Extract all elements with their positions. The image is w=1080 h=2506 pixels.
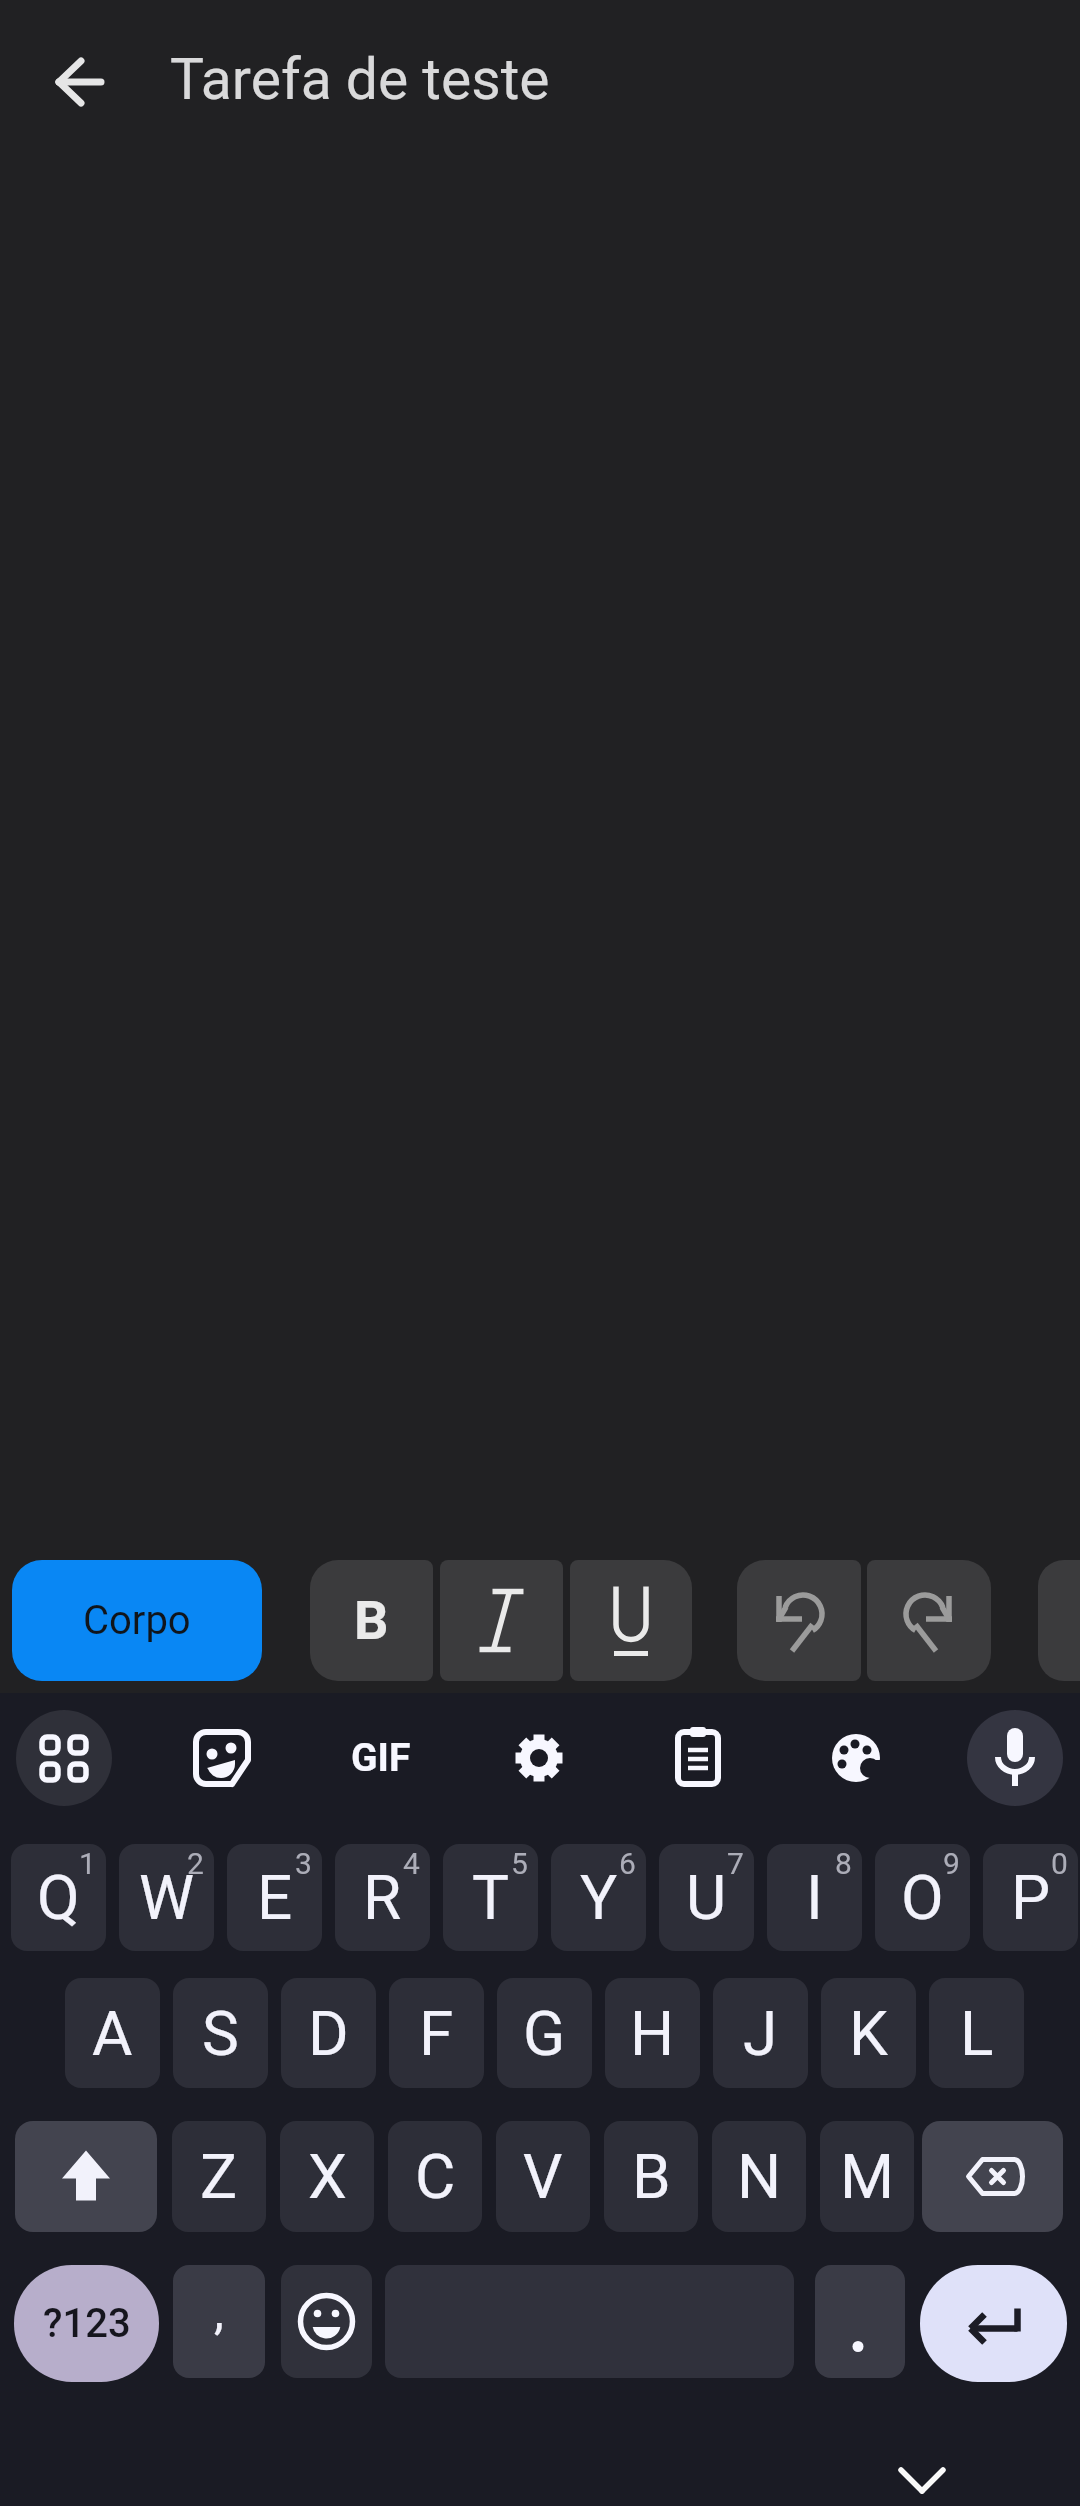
staticText: E [257, 1861, 293, 1934]
staticText: U [686, 1861, 727, 1934]
staticText: 8 [835, 1846, 852, 1881]
staticText: P [1011, 1861, 1051, 1934]
button[interactable] [1038, 1560, 1080, 1681]
staticText: W [139, 1861, 195, 1934]
button[interactable] [491, 1710, 587, 1806]
staticText: N [737, 2140, 782, 2213]
button[interactable]: G [497, 1978, 592, 2088]
staticText: Y [580, 1861, 618, 1934]
staticText: K [849, 1997, 888, 2070]
button[interactable] [808, 1710, 904, 1806]
staticText: T [472, 1861, 509, 1934]
button[interactable] [15, 2121, 157, 2232]
staticText: C [415, 2140, 456, 2213]
button[interactable]: A [65, 1978, 160, 2088]
button[interactable]: L [929, 1978, 1024, 2088]
button[interactable] [16, 1710, 112, 1806]
staticText: V [523, 2140, 563, 2213]
button[interactable]: N [712, 2121, 806, 2232]
button[interactable]: Y [551, 1844, 646, 1951]
button[interactable]: O [875, 1844, 970, 1951]
staticText: 6 [619, 1846, 636, 1881]
staticText: M [840, 2140, 895, 2213]
button[interactable] [922, 2121, 1063, 2232]
staticText: 9 [943, 1846, 960, 1881]
button[interactable] [815, 2265, 905, 2378]
button[interactable]: F [389, 1978, 484, 2088]
staticText: GIF [351, 1735, 411, 1781]
staticText: X [308, 2140, 347, 2213]
staticText: H [630, 1997, 675, 2070]
button[interactable]: J [713, 1978, 808, 2088]
staticText: Z [200, 2140, 238, 2213]
button[interactable]: B [310, 1560, 433, 1681]
staticText: B [632, 2140, 671, 2213]
staticText: 3 [295, 1846, 312, 1881]
staticText: R [363, 1861, 402, 1934]
staticText: L [960, 1997, 994, 2070]
staticText: F [419, 1997, 454, 2070]
staticText: Corpo [83, 1597, 191, 1644]
staticText: , [214, 2282, 224, 2341]
staticText: Q [37, 1861, 80, 1934]
staticText: 4 [403, 1846, 420, 1881]
staticText: J [743, 1997, 778, 2070]
button[interactable] [174, 1710, 270, 1806]
button[interactable] [967, 1710, 1063, 1806]
button[interactable]: X [280, 2121, 374, 2232]
button[interactable]: GIF [333, 1710, 429, 1806]
button[interactable]: Q [11, 1844, 106, 1951]
button[interactable] [920, 2265, 1067, 2382]
button[interactable]: U [659, 1844, 754, 1951]
button[interactable]: C [388, 2121, 482, 2232]
button[interactable]: P [983, 1844, 1078, 1951]
staticText: O [901, 1861, 944, 1934]
button[interactable]: I [767, 1844, 862, 1951]
staticText: 1 [79, 1846, 96, 1881]
button[interactable] [281, 2265, 372, 2378]
staticText: G [523, 1997, 566, 2070]
staticText: 2 [187, 1846, 204, 1881]
button[interactable]: B [604, 2121, 698, 2232]
button[interactable]: D [281, 1978, 376, 2088]
staticText: B [354, 1589, 389, 1652]
button[interactable]: R [335, 1844, 430, 1951]
button[interactable]: T [443, 1844, 538, 1951]
staticText: S [202, 1997, 239, 2070]
button[interactable]: H [605, 1978, 700, 2088]
button[interactable]: W [119, 1844, 214, 1951]
staticText: Tarefa de teste [170, 46, 550, 113]
button[interactable]: K [821, 1978, 916, 2088]
staticText: A [92, 1997, 133, 2070]
button[interactable]: Z [172, 2121, 266, 2232]
button[interactable]: ?123 [14, 2265, 159, 2382]
button[interactable] [867, 1560, 991, 1681]
button[interactable]: Corpo [12, 1560, 262, 1681]
button[interactable]: S [173, 1978, 268, 2088]
button[interactable]: , [173, 2265, 265, 2378]
button[interactable] [570, 1560, 692, 1681]
button[interactable] [440, 1560, 563, 1681]
staticText: 5 [511, 1846, 528, 1881]
button[interactable] [737, 1560, 861, 1681]
staticText: 0 [1051, 1846, 1068, 1881]
staticText: I [806, 1861, 823, 1934]
button[interactable]: M [820, 2121, 914, 2232]
button[interactable]: E [227, 1844, 322, 1951]
staticText: ?123 [43, 2300, 131, 2347]
button[interactable]: V [496, 2121, 590, 2232]
staticText: 7 [727, 1846, 744, 1881]
button[interactable] [885, 2440, 957, 2506]
staticText: D [308, 1997, 349, 2070]
button[interactable] [32, 34, 128, 130]
button[interactable] [650, 1710, 746, 1806]
